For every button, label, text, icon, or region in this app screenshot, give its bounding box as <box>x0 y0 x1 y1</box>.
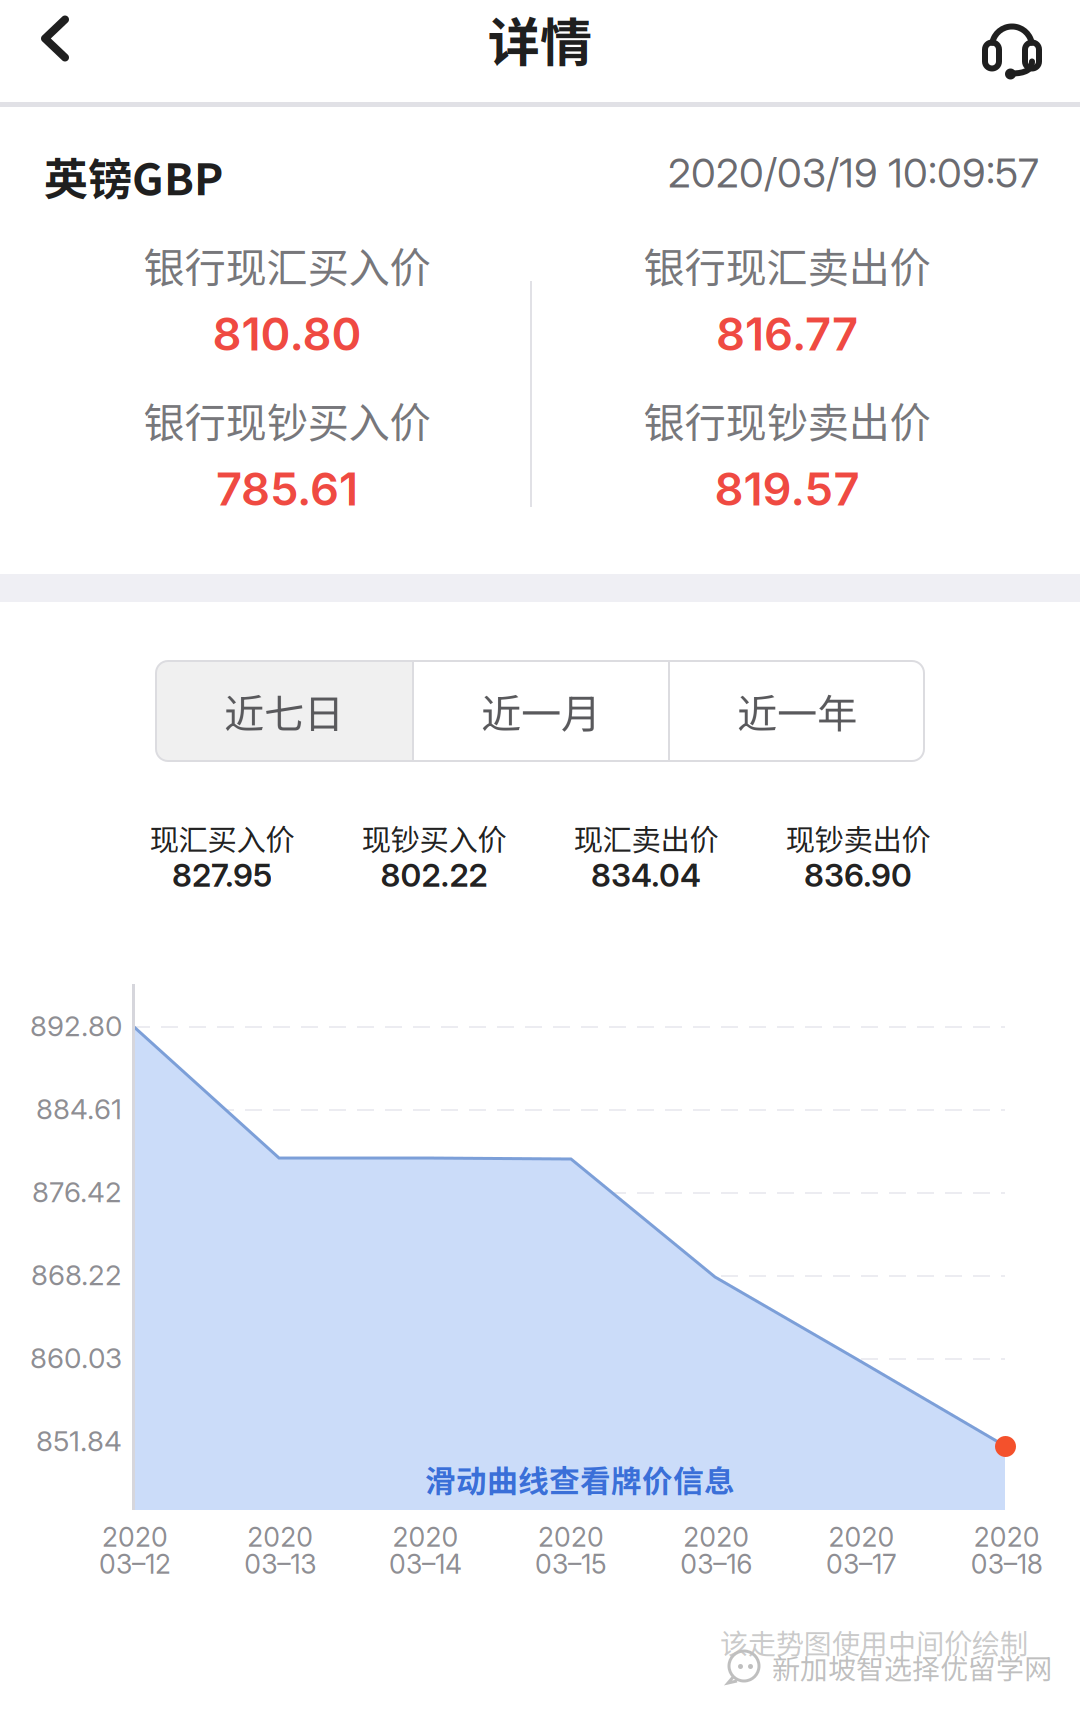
staticText: 近七日 <box>224 682 344 740</box>
staticText: 892.80 <box>30 1009 122 1043</box>
staticText: 近一年 <box>737 682 857 740</box>
staticText: 851.84 <box>36 1424 122 1458</box>
staticText: 884.61 <box>36 1092 122 1126</box>
staticText: 近一月 <box>481 682 601 740</box>
button[interactable]: 近七日 <box>156 661 412 761</box>
staticText: 2020 <box>393 1521 459 1553</box>
staticText: 2020 <box>538 1521 604 1553</box>
staticText: 03–17 <box>826 1548 897 1580</box>
staticText: 现钞买入价 <box>361 817 506 859</box>
staticText: 2020/03/19 10:09:57 <box>668 149 1039 197</box>
staticText: 2020 <box>683 1521 749 1553</box>
staticText: 银行现钞买入价 <box>143 390 430 450</box>
staticText: 810.80 <box>212 307 361 361</box>
staticText: 836.90 <box>804 856 912 894</box>
staticText: 827.95 <box>172 856 272 894</box>
staticText: 2020 <box>102 1521 168 1553</box>
staticText: 819.57 <box>714 462 859 516</box>
button[interactable]: 近一年 <box>670 661 924 761</box>
staticText: 03–14 <box>389 1548 462 1580</box>
staticText: 英镑GBP <box>44 144 223 208</box>
staticText: 03–16 <box>680 1548 752 1580</box>
staticText: 现汇买入价 <box>149 817 294 859</box>
staticText: 2020 <box>247 1521 313 1553</box>
staticText: 868.22 <box>31 1258 122 1292</box>
staticText: 03–12 <box>99 1548 171 1580</box>
staticText: 2020 <box>974 1521 1040 1553</box>
staticText: 现钞卖出价 <box>785 817 930 859</box>
staticText: 860.03 <box>30 1341 122 1375</box>
button[interactable]: 在线客服 <box>957 10 1067 87</box>
staticText: 802.22 <box>380 856 487 894</box>
staticText: 834.04 <box>591 856 701 894</box>
staticText: 876.42 <box>32 1175 122 1209</box>
staticText: 现汇卖出价 <box>573 817 718 859</box>
staticText: 785.61 <box>216 462 358 516</box>
staticText: 2020 <box>828 1521 894 1553</box>
staticText: 银行现汇卖出价 <box>643 235 930 295</box>
staticText: 816.77 <box>716 307 858 361</box>
staticText: 银行现汇买入价 <box>143 235 430 295</box>
staticText: 银行现钞卖出价 <box>643 390 930 450</box>
staticText: 详情 <box>488 1 592 76</box>
staticText: 03–15 <box>535 1548 607 1580</box>
staticText: 该走势图使用中间价绘制 <box>720 1622 1028 1662</box>
staticText: 03–13 <box>244 1548 316 1580</box>
staticText: 新加坡智选择优留学网 <box>772 1647 1052 1687</box>
staticText: 滑动曲线查看牌价信息 <box>425 1457 735 1501</box>
button[interactable]: 返回 <box>0 0 110 77</box>
staticText: 03–18 <box>971 1548 1043 1580</box>
button[interactable]: 近一月 <box>414 661 668 761</box>
